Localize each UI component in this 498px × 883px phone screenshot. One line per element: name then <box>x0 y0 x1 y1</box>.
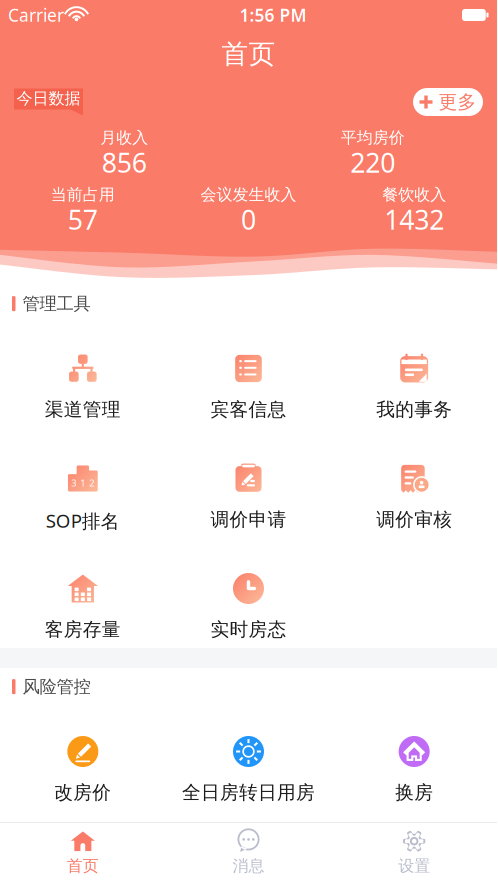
staticText: 调价申请 <box>210 508 286 531</box>
staticText: 宾客信息 <box>210 398 286 421</box>
staticText: 1432 <box>384 202 444 237</box>
staticText: 设置 <box>398 856 430 876</box>
staticText: 首页 <box>67 856 99 876</box>
staticText: 管理工具 <box>22 293 90 314</box>
staticText: 更多 <box>438 90 476 113</box>
button[interactable]: 改房价 <box>0 736 166 804</box>
staticText: 实时房态 <box>210 618 286 641</box>
staticText: 会议发生收入 <box>200 185 296 205</box>
staticText: 今日数据 <box>16 88 80 108</box>
staticText: 220 <box>350 145 395 180</box>
staticText: 客房存量 <box>45 618 121 641</box>
staticText: SOP排名 <box>46 508 120 533</box>
staticText: 3 1 2 <box>71 477 94 489</box>
button[interactable]: 客房存量 <box>0 573 166 641</box>
button[interactable]: 更多 <box>413 88 483 116</box>
button[interactable]: 宾客信息 <box>166 353 331 421</box>
staticText: 当前占用 <box>51 185 115 205</box>
staticText: 首页 <box>221 38 275 70</box>
button[interactable]: 首页 <box>0 830 166 876</box>
staticText: 消息 <box>232 856 264 876</box>
staticText: 我的事务 <box>376 398 452 421</box>
staticText: Carrier <box>8 3 64 26</box>
button[interactable]: 3 1 2 <box>0 463 166 533</box>
button[interactable]: 调价申请 <box>166 463 331 531</box>
button[interactable]: 实时房态 <box>166 573 331 641</box>
staticText: 渠道管理 <box>45 398 121 421</box>
staticText: 1:56 PM <box>239 3 306 26</box>
staticText: 平均房价 <box>341 128 405 148</box>
button[interactable]: 调价审核 <box>331 463 497 531</box>
staticText: 餐饮收入 <box>382 185 446 205</box>
button[interactable]: 渠道管理 <box>0 353 166 421</box>
staticText: 57 <box>68 202 98 237</box>
staticText: 换房 <box>395 781 433 804</box>
button[interactable]: 我的事务 <box>331 353 497 421</box>
button[interactable]: 全日房转日用房 <box>166 736 331 804</box>
staticText: 调价审核 <box>376 508 452 531</box>
staticText: 0 <box>241 202 256 237</box>
staticText: 风险管控 <box>22 676 90 697</box>
button[interactable]: 消息 <box>166 830 331 876</box>
staticText: 856 <box>102 145 147 180</box>
staticText: 月收入 <box>100 128 148 148</box>
button[interactable]: 设置 <box>331 830 497 876</box>
staticText: 改房价 <box>54 781 111 804</box>
button[interactable]: 换房 <box>331 736 497 804</box>
staticText: 全日房转日用房 <box>182 781 315 804</box>
